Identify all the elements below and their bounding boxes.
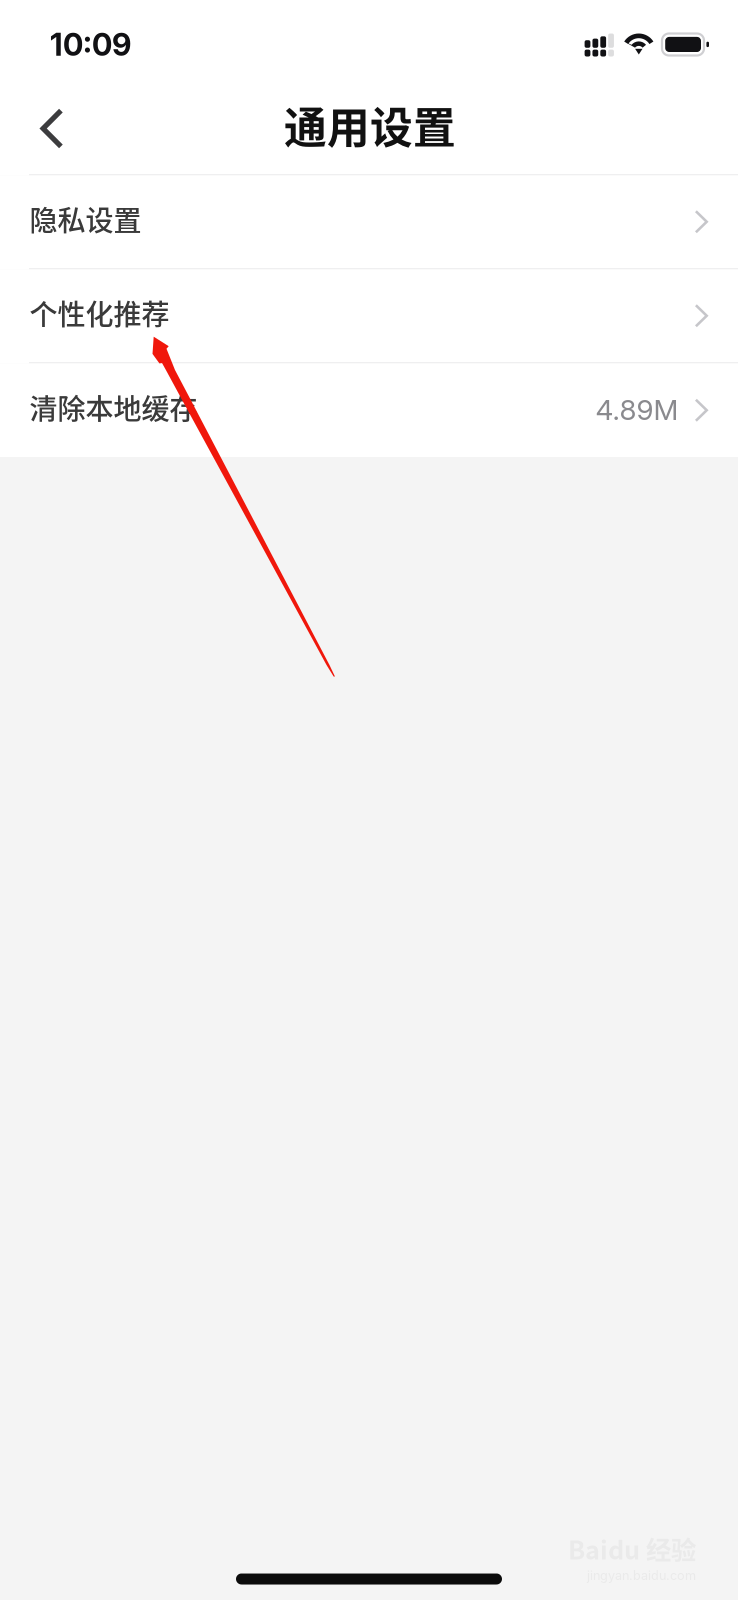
staticText: 隐私设置 — [29, 198, 141, 239]
button[interactable]: 返回 — [0, 84, 104, 172]
staticText: 4.89M — [596, 393, 679, 427]
staticText: 10:09 — [50, 26, 131, 63]
staticText: Baidu 经验 — [568, 1530, 696, 1567]
staticText: 通用设置 — [284, 94, 456, 156]
staticText: jingyan.baidu.com — [587, 1568, 696, 1583]
button[interactable]: 隐私设置 — [0, 175, 738, 268]
button[interactable]: 个性化推荐 — [0, 269, 738, 362]
staticText: 清除本地缓存 — [29, 387, 197, 427]
button[interactable]: 清除本地缓存 — [0, 363, 738, 457]
staticText: 个性化推荐 — [29, 292, 169, 333]
